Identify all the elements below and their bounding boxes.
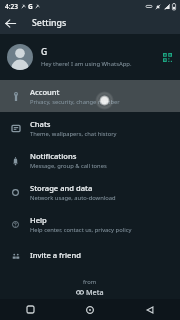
button[interactable]: Help	[0, 208, 180, 240]
button[interactable]: Chats	[0, 112, 180, 144]
staticText: from	[83, 278, 97, 286]
button[interactable]: Notifications	[0, 144, 180, 176]
staticText: Storage and data	[30, 183, 93, 193]
button[interactable]: G	[0, 34, 180, 80]
button[interactable]: QR code	[159, 49, 175, 65]
button[interactable]: Storage and data	[0, 176, 180, 208]
button[interactable]: Recent apps	[0, 299, 60, 320]
staticText: Help center, contact us, privacy policy	[30, 226, 132, 234]
staticText: Chats	[30, 119, 51, 129]
staticText: Settings	[32, 17, 67, 29]
button[interactable]: Account	[0, 80, 180, 112]
staticText: Help	[30, 215, 47, 225]
button[interactable]: Home	[60, 299, 120, 320]
staticText: 4:23	[5, 2, 18, 11]
staticText: Invite a friend	[30, 250, 81, 260]
staticText: Account	[30, 87, 60, 97]
staticText: Message, group & call tones	[30, 162, 107, 170]
staticText: Privacy, security, change number	[30, 98, 120, 106]
staticText: Meta	[86, 287, 104, 297]
staticText: Notifications	[30, 151, 77, 161]
button[interactable]: Back	[0, 13, 21, 34]
staticText: Theme, wallpapers, chat history	[30, 130, 117, 138]
button[interactable]: Invite a friend	[0, 240, 180, 270]
staticText: Hey there! I am using WhatsApp.	[41, 60, 132, 68]
button[interactable]: Back	[120, 299, 180, 320]
staticText: G	[28, 2, 33, 11]
staticText: G	[41, 46, 48, 58]
staticText: Network usage, auto-download	[30, 194, 116, 202]
